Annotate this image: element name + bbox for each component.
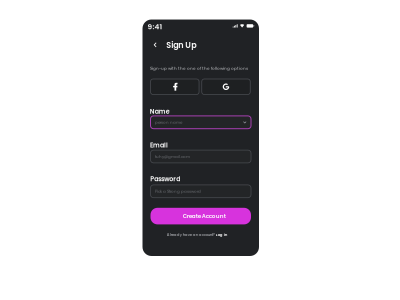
button[interactable]: Pick a Strong password bbox=[150, 185, 251, 198]
staticText: person name bbox=[155, 119, 182, 125]
staticText: tuhy@gmail.com bbox=[155, 154, 190, 159]
button[interactable]: person name bbox=[150, 116, 251, 129]
staticText: Password bbox=[150, 175, 180, 184]
button[interactable]: tuhy@gmail.com bbox=[150, 150, 251, 163]
staticText: 9:41 bbox=[148, 21, 163, 32]
button[interactable]: Sign up with Facebook bbox=[151, 79, 199, 94]
staticText: Name bbox=[150, 107, 170, 116]
button[interactable]: Already have an account? bbox=[167, 232, 228, 237]
button[interactable]: Back bbox=[151, 40, 160, 50]
staticText: Log in bbox=[216, 232, 228, 237]
button[interactable]: Create Account bbox=[150, 208, 251, 224]
staticText: Already have an account? bbox=[167, 232, 215, 237]
staticText: Pick a Strong password bbox=[155, 188, 201, 194]
button[interactable]: Sign up with Google bbox=[202, 79, 250, 94]
staticText: Sign Up bbox=[166, 40, 196, 51]
staticText: Email bbox=[150, 141, 168, 150]
staticText: Sign-up with the one of the following op… bbox=[150, 65, 248, 71]
staticText: Create Account bbox=[183, 212, 226, 220]
